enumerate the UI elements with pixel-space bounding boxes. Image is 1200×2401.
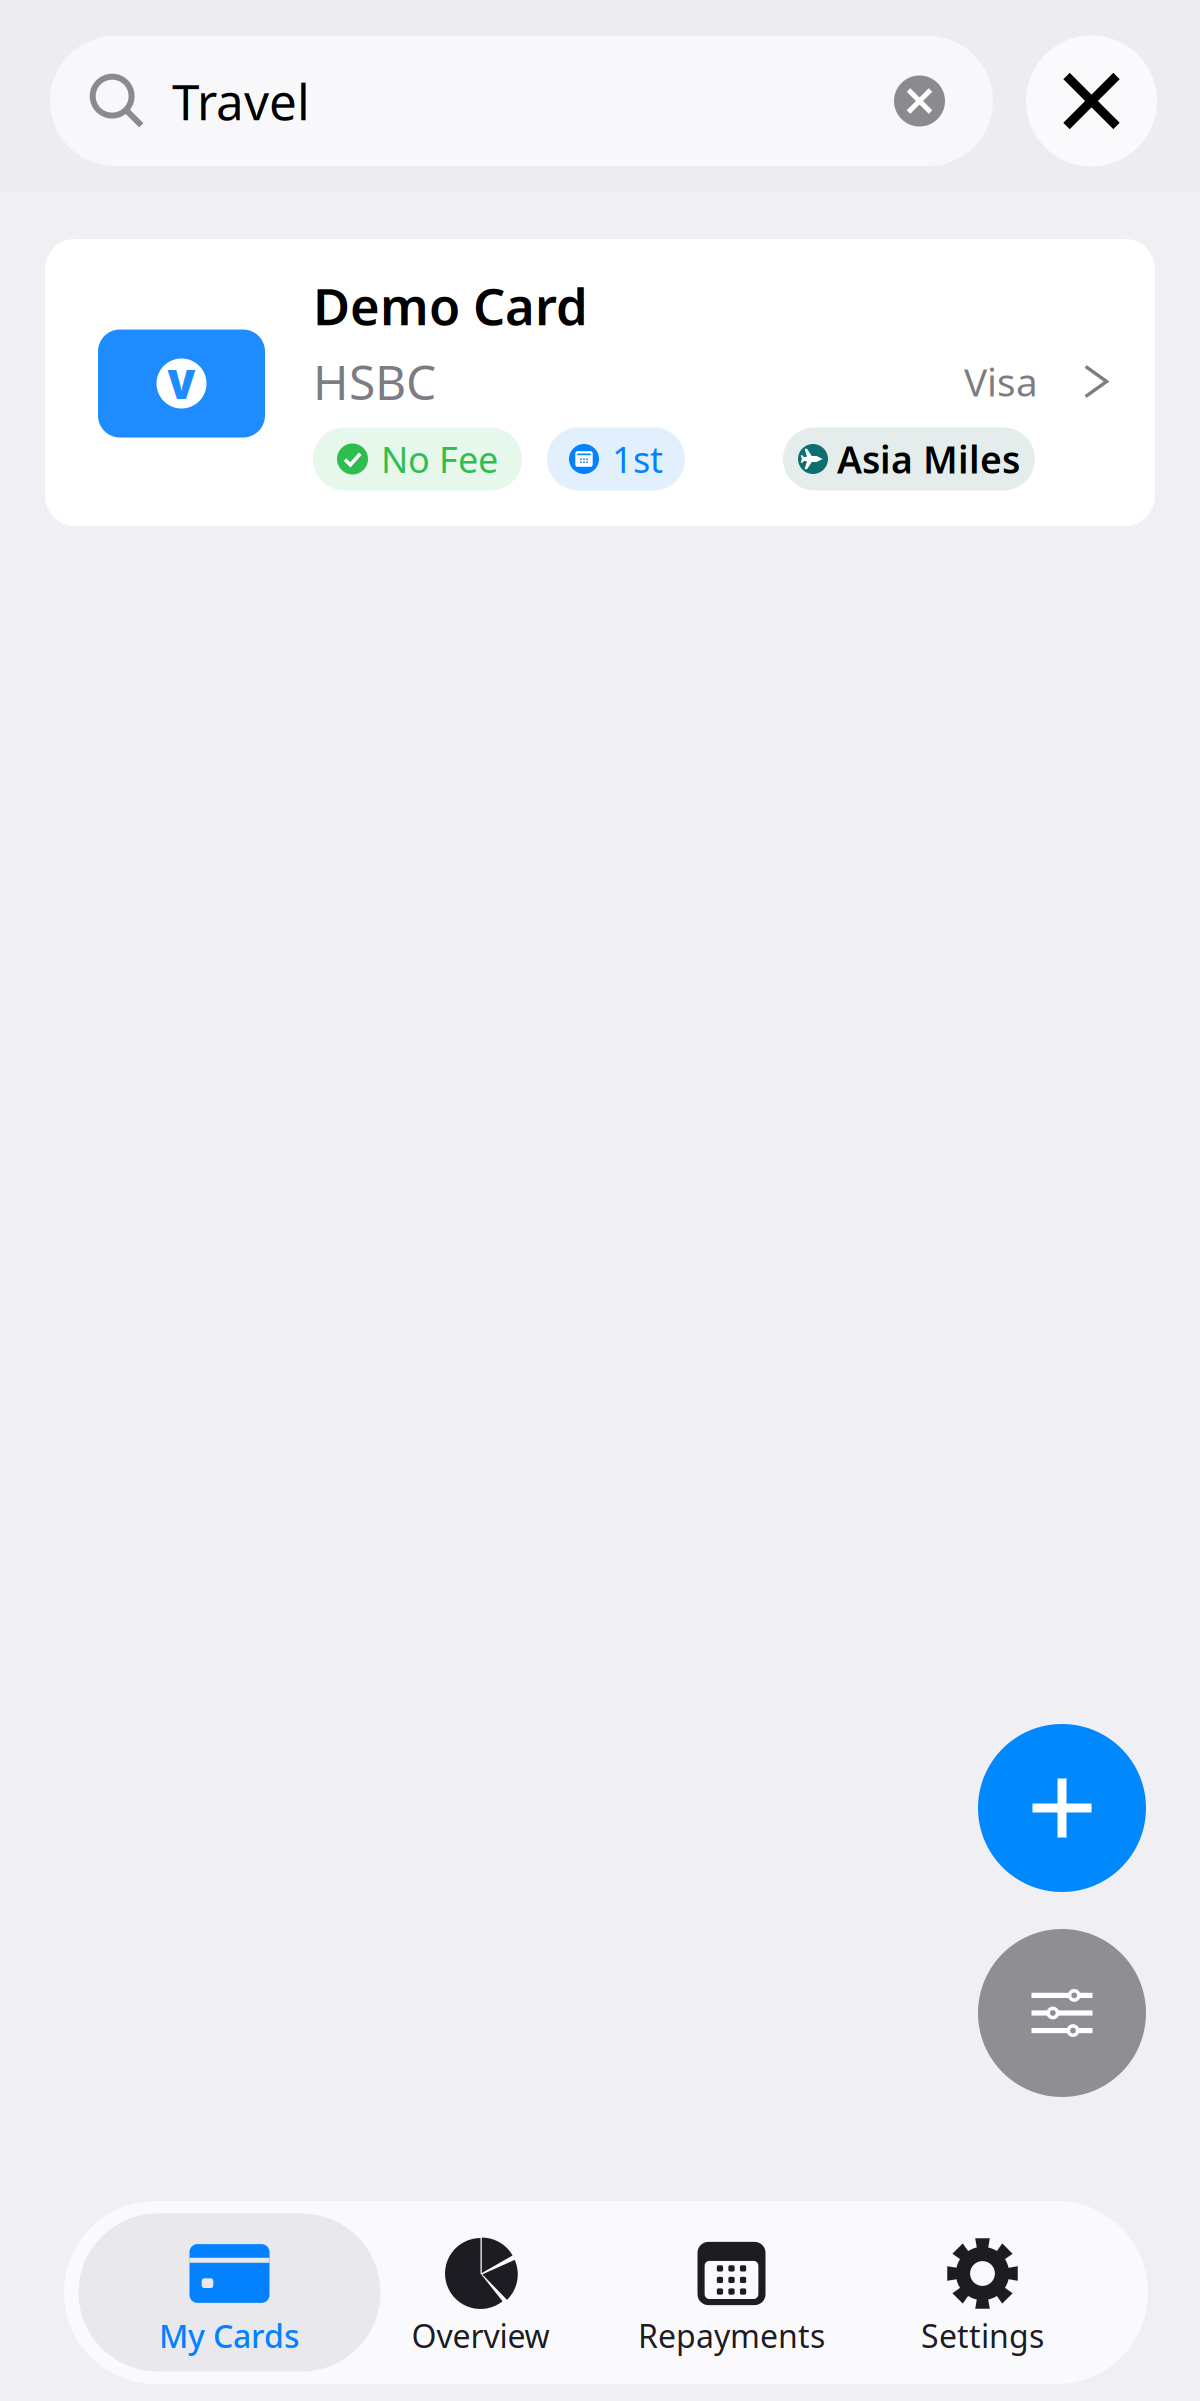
staticText: HSBC [313,350,436,413]
button[interactable]: Clear search text [894,53,993,148]
staticText: Settings [921,2314,1044,2357]
staticText: V [167,357,195,410]
button[interactable]: Overview [355,2213,606,2371]
button[interactable]: Close search [1026,35,1157,166]
staticText: Demo Card [313,272,588,339]
button[interactable]: V [45,239,1155,526]
button[interactable]: Add card [978,1724,1146,1892]
staticText: 1st [612,435,663,483]
staticText: Repayments [638,2314,825,2357]
staticText: Asia Miles [837,434,1020,484]
button[interactable]: Filter results [978,1929,1146,2097]
staticText: Overview [411,2314,549,2357]
staticText: Travel [172,68,310,134]
button[interactable]: Settings [857,2213,1108,2371]
staticText: My Cards [159,2314,300,2357]
staticText: Visa [964,356,1038,407]
button[interactable]: My Cards [104,2213,355,2371]
staticText: No Fee [381,435,498,483]
button[interactable]: Repayments [606,2213,857,2371]
